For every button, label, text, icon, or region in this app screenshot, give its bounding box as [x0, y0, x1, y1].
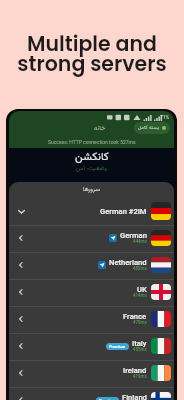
staticText: German: [120, 231, 147, 240]
staticText: بسته کامل: [138, 124, 160, 132]
staticText: خانه: [94, 123, 106, 133]
other: Open German: [17, 234, 25, 242]
staticText: 482ms: [133, 266, 147, 271]
staticText: Italy: [132, 339, 147, 348]
other: Open Italy: [17, 342, 25, 350]
staticText: 455ms: [133, 347, 147, 352]
staticText: UK: [137, 285, 147, 294]
button[interactable]: Open UK: [9, 280, 174, 306]
staticText: 71%: [160, 114, 170, 120]
button[interactable]: Open Netherland: [9, 253, 174, 279]
staticText: کانکشن: [75, 149, 109, 166]
staticText: سرورها: [83, 185, 100, 194]
button[interactable]: Open Finland: [9, 388, 174, 400]
button[interactable]: Open France: [9, 307, 174, 333]
staticText: Finland: [122, 393, 147, 400]
button[interactable]: بسته کامل: [134, 122, 170, 134]
other: Open UK: [17, 288, 25, 296]
button[interactable]: Collapse group: [9, 197, 174, 225]
staticText: Netherland: [109, 258, 147, 267]
staticText: 414ms: [133, 293, 147, 298]
staticText: وضعیت: امن: [76, 164, 108, 173]
staticText: Multiple and strong servers: [0, 29, 184, 79]
other: Collapse group: [17, 207, 26, 216]
staticText: 419ms: [133, 374, 147, 379]
staticText: German #2IM: [100, 207, 147, 216]
other: Open France: [17, 315, 25, 323]
button[interactable]: Open Italy: [9, 334, 174, 360]
button[interactable]: Open German: [9, 226, 174, 252]
other: Open Ireland: [17, 369, 25, 377]
other: Open Netherland: [17, 261, 25, 269]
staticText: Success: HTTP connection took 527ms: [48, 139, 136, 145]
staticText: France: [123, 312, 147, 321]
button[interactable]: Open Ireland: [9, 361, 174, 387]
staticText: Premium: [99, 398, 116, 400]
staticText: 444ms: [133, 239, 147, 244]
staticText: Premium: [109, 344, 126, 349]
staticText: Ireland: [123, 366, 147, 375]
other: Open Finland: [17, 396, 25, 400]
staticText: 479ms: [133, 320, 147, 325]
